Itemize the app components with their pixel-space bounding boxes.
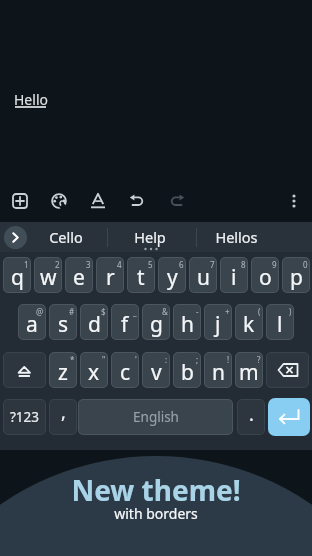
- button[interactable]: [7, 188, 33, 214]
- button[interactable]: Hellos: [205, 224, 267, 250]
- button[interactable]: h: [173, 304, 201, 340]
- button[interactable]: e: [65, 257, 93, 293]
- button[interactable]: v: [142, 352, 170, 388]
- button[interactable]: [124, 188, 150, 214]
- button[interactable]: u: [189, 257, 217, 293]
- staticText: 2: [55, 259, 60, 270]
- button[interactable]: [78, 399, 233, 435]
- button[interactable]: m: [235, 352, 263, 388]
- staticText: a: [26, 310, 38, 339]
- button[interactable]: [164, 188, 190, 214]
- staticText: ): [289, 306, 292, 317]
- staticText: 3: [86, 259, 91, 270]
- button[interactable]: z: [49, 352, 77, 388]
- button[interactable]: .: [237, 399, 265, 435]
- staticText: New theme!: [71, 471, 241, 504]
- staticText: q: [11, 263, 24, 292]
- button[interactable]: [85, 188, 111, 214]
- staticText: ': [135, 354, 137, 365]
- staticText: d: [88, 310, 101, 339]
- staticText: -: [196, 306, 199, 317]
- staticText: c: [120, 358, 131, 387]
- button[interactable]: t: [127, 257, 155, 293]
- staticText: u: [197, 263, 210, 292]
- button[interactable]: f: [111, 304, 139, 340]
- staticText: .: [249, 402, 254, 427]
- staticText: 6: [179, 259, 184, 270]
- button[interactable]: p: [282, 257, 310, 293]
- button[interactable]: g: [142, 304, 170, 340]
- staticText: $: [101, 306, 106, 317]
- button[interactable]: Hello: [14, 90, 50, 110]
- button[interactable]: l: [266, 304, 294, 340]
- staticText: @: [36, 306, 44, 317]
- button[interactable]: j: [204, 304, 232, 340]
- staticText: 8: [241, 259, 246, 270]
- staticText: _: [133, 306, 137, 317]
- staticText: 7: [210, 259, 215, 270]
- button[interactable]: x: [80, 352, 108, 388]
- button[interactable]: [46, 188, 72, 214]
- staticText: o: [259, 263, 272, 292]
- staticText: g: [150, 310, 163, 339]
- button[interactable]: Help: [119, 224, 181, 250]
- staticText: l: [277, 310, 283, 339]
- button[interactable]: [4, 226, 27, 249]
- staticText: 9: [272, 259, 277, 270]
- staticText: Hellos: [215, 227, 258, 247]
- staticText: 0: [303, 259, 308, 270]
- button[interactable]: a: [18, 304, 46, 340]
- staticText: (: [258, 306, 261, 317]
- staticText: #: [69, 306, 75, 317]
- button[interactable]: b: [173, 352, 201, 388]
- staticText: x: [88, 358, 100, 387]
- staticText: e: [73, 263, 85, 292]
- staticText: ;: [196, 354, 199, 365]
- staticText: with borders: [114, 504, 198, 523]
- staticText: y: [167, 263, 178, 292]
- staticText: English: [133, 408, 179, 426]
- button[interactable]: r: [96, 257, 124, 293]
- staticText: :: [165, 354, 168, 365]
- button[interactable]: c: [111, 352, 139, 388]
- button[interactable]: d: [80, 304, 108, 340]
- button[interactable]: i: [220, 257, 248, 293]
- button[interactable]: ?123: [3, 399, 46, 435]
- button[interactable]: [3, 352, 46, 388]
- staticText: p: [290, 263, 303, 292]
- staticText: b: [181, 358, 194, 387]
- staticText: m: [239, 358, 259, 387]
- button[interactable]: s: [49, 304, 77, 340]
- staticText: f: [121, 310, 129, 339]
- button[interactable]: o: [251, 257, 279, 293]
- staticText: 5: [148, 259, 153, 270]
- staticText: Help: [134, 227, 166, 247]
- staticText: +: [225, 306, 230, 317]
- staticText: k: [243, 310, 255, 339]
- staticText: !: [227, 354, 230, 365]
- staticText: &: [162, 306, 168, 317]
- staticText: r: [106, 263, 115, 292]
- button[interactable]: Cello: [35, 224, 97, 250]
- staticText: n: [212, 358, 225, 387]
- staticText: t: [137, 263, 145, 292]
- staticText: ?123: [10, 408, 40, 426]
- staticText: 1: [24, 259, 29, 270]
- staticText: j: [215, 310, 221, 339]
- staticText: *: [70, 354, 75, 365]
- button[interactable]: n: [204, 352, 232, 388]
- button[interactable]: k: [235, 304, 263, 340]
- button[interactable]: q: [3, 257, 31, 293]
- staticText: 4: [117, 259, 122, 270]
- staticText: v: [151, 358, 162, 387]
- button[interactable]: y: [158, 257, 186, 293]
- staticText: i: [231, 263, 237, 292]
- button[interactable]: [266, 352, 309, 388]
- staticText: s: [58, 310, 69, 339]
- button[interactable]: [281, 188, 307, 214]
- button[interactable]: ,: [49, 399, 77, 435]
- button[interactable]: w: [34, 257, 62, 293]
- staticText: ?: [257, 354, 261, 365]
- staticText: w: [40, 263, 57, 292]
- button[interactable]: [268, 398, 310, 436]
